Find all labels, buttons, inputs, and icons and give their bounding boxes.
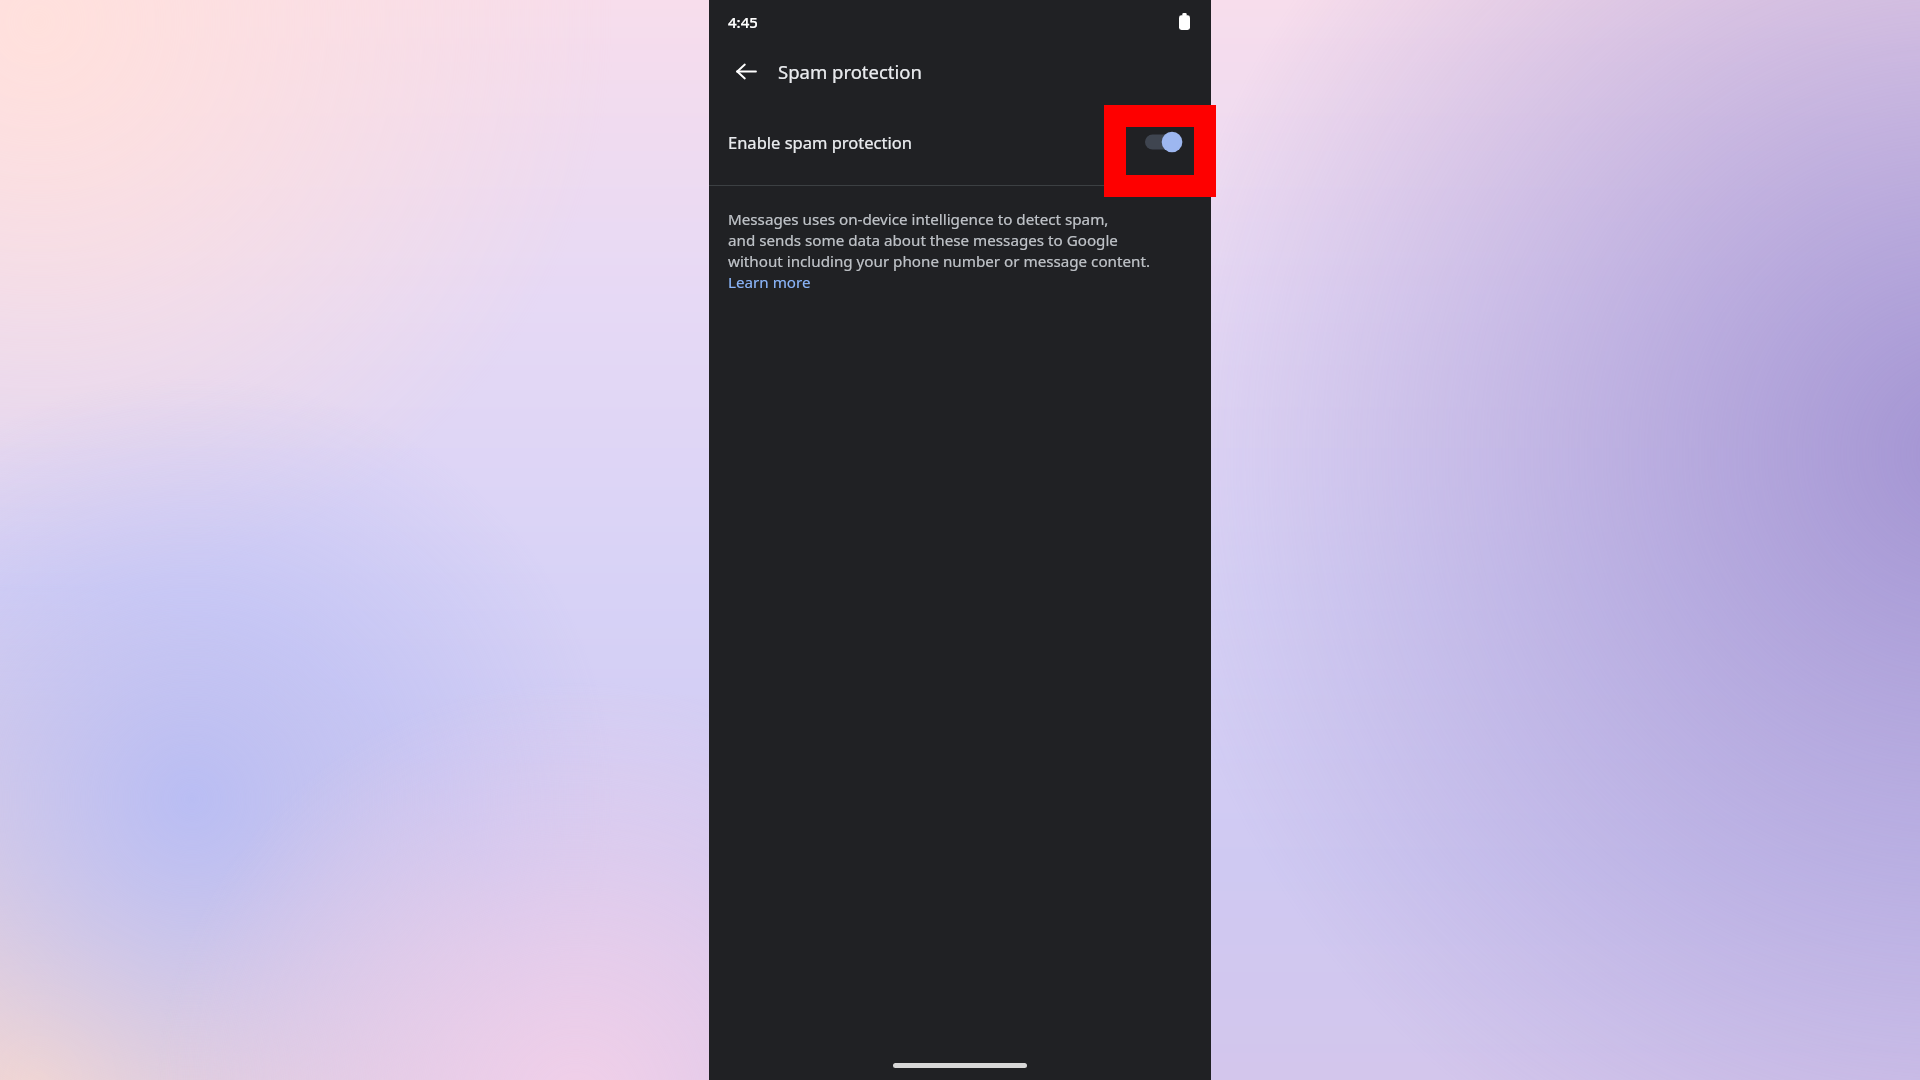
button[interactable]: Enable spam protection toggle, on <box>1145 127 1189 157</box>
staticText: Enable spam protection <box>728 131 912 153</box>
button[interactable]: Learn more <box>728 272 811 293</box>
button[interactable]: Back <box>731 56 761 86</box>
staticText: Learn more <box>728 272 811 293</box>
staticText: Spam protection <box>778 59 922 84</box>
staticText: Messages uses on-device intelligence to … <box>728 209 1109 230</box>
staticText: without including your phone number or m… <box>728 251 1150 272</box>
staticText: and sends some data about these messages… <box>728 230 1118 251</box>
button[interactable]: Enable spam protection <box>709 99 1211 185</box>
staticText: 4:45 <box>728 12 758 32</box>
